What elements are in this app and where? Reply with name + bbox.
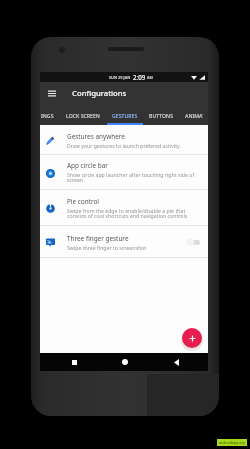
- button[interactable]: Add: [182, 328, 202, 348]
- staticText: androidapp.org: [219, 440, 245, 445]
- staticText: Swipe from the edge to enable/disable a …: [67, 207, 188, 220]
- button[interactable]: Pie control: [40, 190, 208, 226]
- button[interactable]: App circle bar: [40, 155, 208, 190]
- button[interactable]: Home: [108, 353, 142, 371]
- staticText: SUN 29 JAN: [109, 75, 131, 80]
- staticText: App circle bar: [67, 161, 108, 170]
- button[interactable]: Gestures anywhere: [40, 125, 208, 155]
- staticText: GESTURES: [112, 112, 138, 119]
- staticText: 2:09: [133, 73, 146, 81]
- staticText: Show circle app launcher after touching …: [67, 171, 195, 184]
- button[interactable]: Back: [159, 353, 193, 371]
- staticText: INGS: [41, 112, 54, 119]
- staticText: Swipe three finger to screenshot: [67, 244, 147, 251]
- button[interactable]: Menu: [40, 82, 63, 105]
- staticText: AM: [147, 75, 153, 80]
- button[interactable]: GESTURES: [107, 105, 143, 125]
- button[interactable]: ANIMATIONS: [178, 105, 203, 125]
- button[interactable]: Three finger gesture: [40, 226, 208, 258]
- staticText: LOCK SCREEN: [66, 112, 100, 119]
- staticText: BUTTONS: [149, 112, 173, 119]
- staticText: Configurations: [72, 88, 127, 99]
- button[interactable]: Recents: [57, 353, 91, 371]
- button[interactable]: LOCK SCREEN: [59, 105, 107, 125]
- button[interactable]: INGS: [35, 105, 59, 125]
- staticText: Draw your gestures to launch prefered ac…: [67, 142, 181, 149]
- button[interactable]: BUTTONS: [143, 105, 178, 125]
- staticText: Gestures anywhere: [67, 132, 125, 141]
- staticText: Three finger gesture: [67, 234, 129, 243]
- staticText: ANIMATIONS: [185, 112, 203, 119]
- staticText: Pie control: [67, 197, 99, 206]
